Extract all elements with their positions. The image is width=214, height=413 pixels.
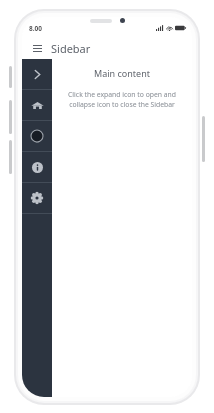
button[interactable]: Settings [22, 183, 52, 213]
staticText: Main content [94, 67, 150, 79]
staticText: 8.00 [29, 24, 42, 33]
staticText: Click the expand icon to open and collap… [58, 90, 186, 109]
staticText: Sidebar [51, 41, 91, 56]
button[interactable]: Expand sidebar [22, 59, 52, 89]
button[interactable]: Info [22, 152, 52, 182]
button[interactable]: Open navigation menu [29, 40, 45, 56]
button[interactable]: Profile [22, 121, 52, 151]
button[interactable]: Home [22, 90, 52, 120]
